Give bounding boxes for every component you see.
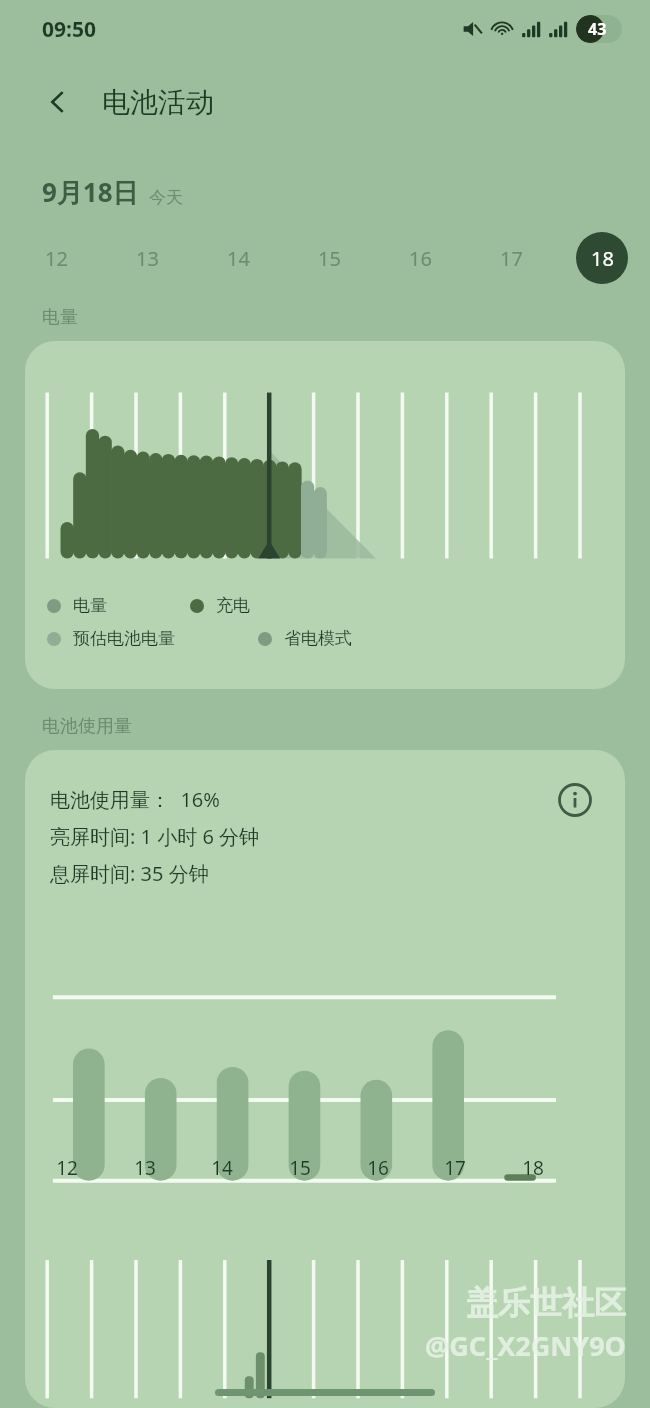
button[interactable]: 电量 — [25, 341, 625, 689]
button[interactable]: 16 — [394, 232, 446, 284]
button[interactable]: Back — [36, 80, 80, 124]
staticText: 16 — [358, 1155, 398, 1181]
staticText: 17 — [500, 245, 523, 272]
staticText: 今天 — [149, 187, 183, 208]
staticText: 13 — [125, 1155, 165, 1181]
button[interactable]: 15 — [303, 232, 355, 284]
staticText: 预估电池电量 — [73, 628, 175, 649]
button[interactable]: 14 — [212, 232, 264, 284]
button[interactable]: 12 — [30, 232, 82, 284]
button[interactable]: 电池使用量： 16% — [25, 750, 625, 1408]
staticText: 14 — [202, 1155, 242, 1181]
button[interactable]: 18 — [576, 232, 628, 284]
staticText: 电池使用量 — [42, 715, 132, 738]
staticText: 14 — [227, 245, 250, 272]
staticText: @GC_X2GNY9O — [425, 1327, 626, 1364]
staticText: 16 — [409, 245, 432, 272]
staticText: 09:50 — [42, 15, 96, 44]
button[interactable]: Info — [553, 778, 597, 822]
staticText: 息屏时间: 35 分钟 — [50, 860, 209, 887]
staticText: 电池使用量： 16% — [50, 786, 220, 813]
staticText: 18 — [513, 1155, 553, 1181]
button[interactable]: 13 — [121, 232, 173, 284]
staticText: 电池活动 — [102, 85, 214, 120]
staticText: 盖乐世社区 — [466, 1283, 626, 1323]
staticText: 12 — [47, 1155, 87, 1181]
staticText: 亮屏时间: 1 小时 6 分钟 — [50, 823, 260, 850]
staticText: 43 — [588, 18, 607, 40]
staticText: 9月18日 — [42, 174, 139, 210]
staticText: 13 — [136, 245, 159, 272]
staticText: 18 — [591, 245, 614, 272]
staticText: 电量 — [42, 306, 78, 329]
staticText: 电量 — [73, 595, 107, 616]
staticText: 12 — [45, 245, 68, 272]
staticText: 省电模式 — [284, 628, 352, 649]
button[interactable]: 17 — [485, 232, 537, 284]
staticText: 充电 — [216, 595, 250, 616]
staticText: 15 — [318, 245, 341, 272]
staticText: 15 — [280, 1155, 320, 1181]
staticText: 17 — [435, 1155, 475, 1181]
